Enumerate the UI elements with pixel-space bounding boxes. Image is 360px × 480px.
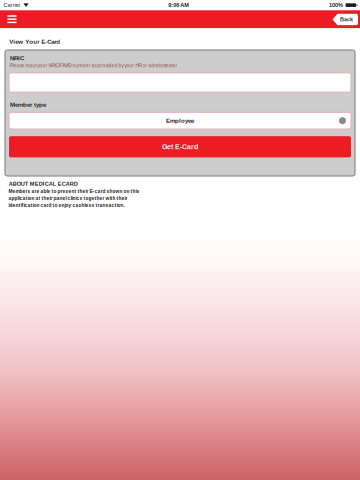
staticText: Carrier — [3, 2, 20, 8]
staticText: Please input your NRIC/FIN/ID number as … — [9, 63, 177, 68]
button[interactable]: Employee — [9, 112, 351, 129]
staticText: Get E-Card — [162, 143, 198, 151]
staticText: Employee — [166, 117, 194, 124]
staticText: View Your E-Card — [9, 38, 60, 45]
staticText: ABOUT MEDICAL ECARD — [9, 181, 78, 187]
staticText: 100% — [329, 2, 343, 8]
button[interactable]: Back — [332, 14, 358, 25]
staticText: NRIC — [10, 55, 24, 62]
staticText: Back — [340, 16, 353, 22]
staticText: Member type — [10, 101, 46, 108]
button[interactable]: Menu — [0, 10, 24, 28]
staticText: Members are able to present their E-card… — [8, 189, 139, 208]
button[interactable]: Get E-Card — [9, 136, 351, 157]
staticText: 9:06 AM — [168, 2, 189, 8]
